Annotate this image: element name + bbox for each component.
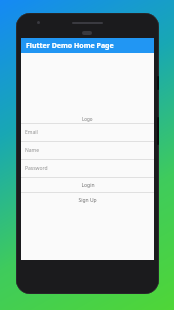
button[interactable]: Sign Up [21,193,154,207]
button[interactable]: Email [21,124,154,141]
staticText: Flutter Demo Home Page [26,41,114,51]
button[interactable]: Flutter Demo Home Page [21,38,154,53]
staticText: Sign Up [78,197,97,204]
staticText: Logo [82,116,93,122]
button[interactable]: Name [21,142,154,159]
staticText: Email [25,129,38,136]
button[interactable]: Login [21,178,154,192]
staticText: Name [25,147,40,154]
staticText: Login [81,182,95,189]
staticText: Password [25,165,48,172]
button[interactable]: Password [21,160,154,177]
